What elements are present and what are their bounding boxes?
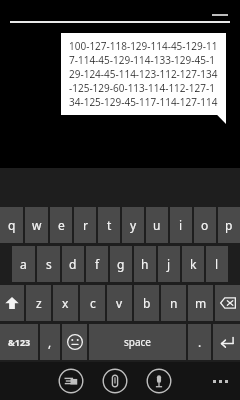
button[interactable]: m — [188, 285, 213, 321]
button[interactable]: Voice — [146, 368, 172, 394]
button[interactable]: , — [40, 324, 60, 360]
button[interactable]: v — [107, 285, 132, 321]
staticText: i — [179, 217, 183, 233]
staticText: z — [36, 295, 42, 311]
staticText: k — [190, 256, 197, 272]
staticText: y — [130, 217, 137, 233]
button[interactable]: n — [161, 285, 186, 321]
staticText: q — [8, 217, 16, 233]
button[interactable]: j — [158, 246, 180, 282]
button[interactable]: Enter — [213, 324, 240, 360]
staticText: f — [95, 256, 100, 272]
staticText: t — [107, 217, 112, 233]
staticText: o — [201, 217, 209, 233]
button[interactable]: . — [188, 324, 211, 360]
staticText: w — [32, 217, 42, 233]
button[interactable]: k — [182, 246, 204, 282]
button[interactable]: q — [0, 207, 23, 243]
staticText: s — [46, 256, 52, 272]
staticText: j — [167, 256, 171, 272]
staticText: n — [170, 295, 178, 311]
button[interactable]: y — [122, 207, 144, 243]
staticText: h — [141, 256, 149, 272]
button[interactable]: x — [53, 285, 78, 321]
staticText: u — [153, 217, 161, 233]
button[interactable]: Backspace — [215, 285, 240, 321]
button[interactable]: i — [170, 207, 192, 243]
button[interactable]: space — [89, 324, 186, 360]
staticText: g — [117, 256, 125, 272]
button[interactable]: &123 — [0, 324, 38, 360]
staticText: x — [62, 295, 69, 311]
staticText: . — [198, 334, 202, 350]
button[interactable]: s — [37, 246, 60, 282]
button[interactable]: d — [62, 246, 84, 282]
staticText: , — [48, 334, 52, 350]
button[interactable]: 100-127-118-129-114-45-129-117-114-45-12… — [61, 33, 226, 115]
staticText: d — [69, 256, 77, 272]
button[interactable]: a — [12, 246, 35, 282]
button[interactable]: More options — [209, 376, 232, 387]
button[interactable]: e — [50, 207, 72, 243]
button[interactable]: o — [194, 207, 216, 243]
staticText: p — [225, 217, 233, 233]
button[interactable]: w — [25, 207, 48, 243]
staticText: space — [124, 335, 151, 349]
staticText: a — [20, 256, 27, 272]
button[interactable]: l — [206, 246, 228, 282]
staticText: b — [143, 295, 151, 311]
button[interactable]: Shift — [0, 285, 24, 321]
staticText: e — [58, 217, 65, 233]
button[interactable]: b — [134, 285, 159, 321]
button[interactable]: Emoji — [62, 324, 87, 360]
staticText: m — [195, 295, 207, 311]
staticText: v — [116, 295, 123, 311]
button[interactable]: h — [134, 246, 156, 282]
staticText: l — [215, 256, 219, 272]
button[interactable]: Attach — [102, 368, 128, 394]
button[interactable]: z — [26, 285, 51, 321]
staticText: r — [83, 217, 88, 233]
button[interactable]: p — [218, 207, 240, 243]
button[interactable]: f — [86, 246, 108, 282]
staticText: &123 — [8, 336, 31, 348]
button[interactable]: r — [74, 207, 96, 243]
staticText: c — [90, 295, 96, 311]
button[interactable]: Messages — [58, 368, 84, 394]
button[interactable]: g — [110, 246, 132, 282]
button[interactable]: c — [80, 285, 105, 321]
staticText: 100-127-118-129-114-45-129-117-114-45-12… — [69, 39, 218, 109]
button[interactable]: t — [98, 207, 120, 243]
button[interactable]: u — [146, 207, 168, 243]
